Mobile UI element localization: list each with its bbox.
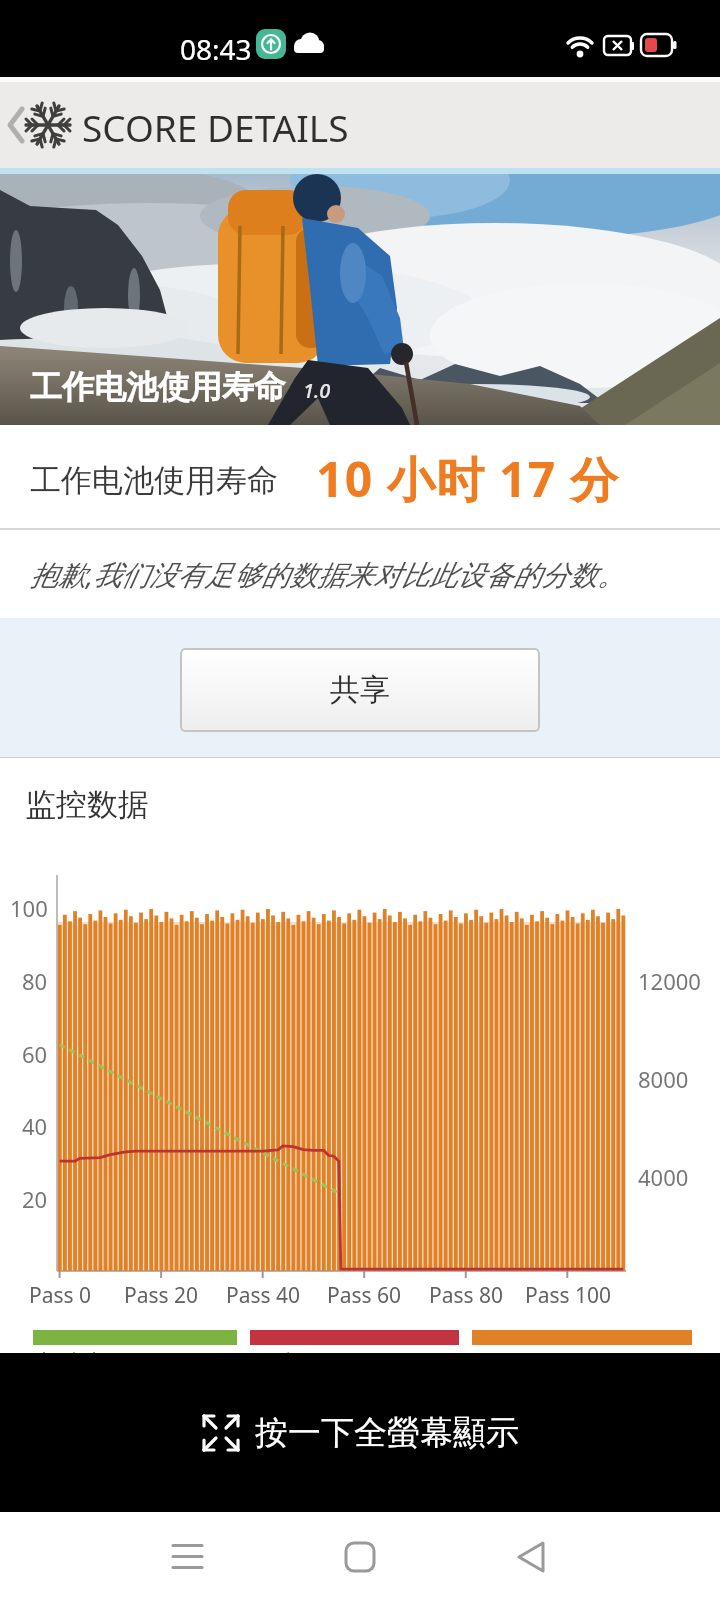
staticText: 60: [22, 1039, 48, 1069]
staticText: 40: [22, 1111, 48, 1141]
button[interactable]: SCORE DETAILS: [0, 77, 720, 168]
button[interactable]: 共享: [180, 648, 540, 732]
staticText: 共享: [330, 671, 390, 709]
button[interactable]: 工作电池使用寿命: [0, 168, 720, 425]
staticText: SCORE DETAILS: [82, 102, 349, 152]
staticText: 12000: [638, 966, 701, 996]
staticText: Pass 60: [327, 1281, 402, 1310]
staticText: 按一下全螢幕顯示: [255, 1412, 519, 1454]
staticText: 80: [22, 966, 48, 996]
button[interactable]: 按一下全螢幕顯示: [0, 1353, 720, 1512]
staticText: 电池电量 %: [33, 1346, 161, 1353]
staticText: Pass 0: [29, 1281, 92, 1310]
staticText: 1.0: [303, 377, 331, 404]
staticText: 20: [22, 1184, 48, 1214]
staticText: Pass 80: [429, 1281, 504, 1310]
staticText: 10 小时 17 分: [316, 446, 620, 512]
staticText: Pass 20: [124, 1281, 199, 1310]
staticText: 抱歉,我们没有足够的数据来对比此设备的分数。: [30, 555, 626, 593]
staticText: 08:43: [180, 30, 252, 68]
staticText: 100: [10, 893, 48, 923]
staticText: Pass 100: [525, 1281, 612, 1310]
staticText: 8000: [638, 1064, 689, 1094]
staticText: 工作电池使用寿命: [30, 461, 278, 500]
staticText: 监控数据: [25, 785, 149, 824]
staticText: Pass 40: [226, 1281, 301, 1310]
staticText: 温度 °C: [250, 1346, 334, 1353]
button[interactable]: [493, 1516, 573, 1596]
button[interactable]: [147, 1516, 227, 1596]
button[interactable]: 工作电池使用寿命: [0, 425, 720, 528]
staticText: 4000: [638, 1162, 689, 1192]
staticText: 工作电池使用寿命: [30, 367, 286, 407]
button[interactable]: [320, 1516, 400, 1596]
